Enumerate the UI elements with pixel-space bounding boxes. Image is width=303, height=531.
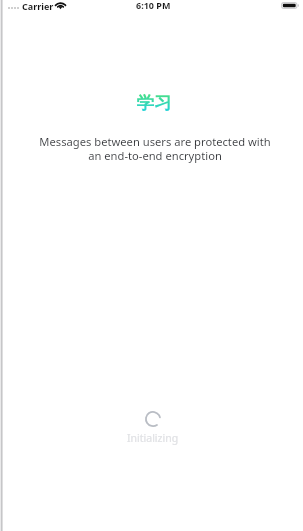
staticText: Messages between users are protected wit…: [35, 134, 275, 163]
staticText: 6:10 PM: [136, 0, 171, 11]
staticText: Carrier: [22, 0, 54, 12]
other: Loading: [145, 411, 161, 427]
other: Wi-Fi: [55, 1, 66, 9]
staticText: Initializing: [127, 431, 179, 445]
staticText: 学习: [136, 92, 172, 114]
other: Battery full: [281, 2, 300, 9]
